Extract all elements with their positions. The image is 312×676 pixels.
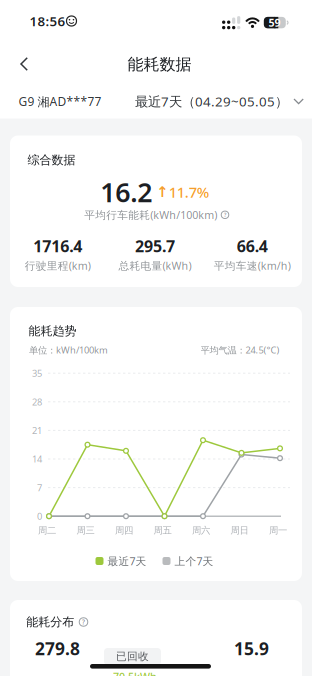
staticText: 上个7天 — [174, 554, 213, 568]
staticText: 0 — [37, 510, 42, 522]
staticText: 能耗分布 — [26, 615, 74, 629]
staticText: 平均行车能耗(kWh/100km) — [84, 208, 217, 222]
staticText: 28 — [32, 396, 42, 408]
staticText: ? — [82, 618, 85, 626]
staticText: 总耗电量(kWh) — [118, 258, 191, 273]
staticText: G9 湘AD***77 — [18, 93, 101, 109]
button[interactable]: 平均行车能耗说明 — [221, 211, 229, 219]
staticText: 7 — [37, 481, 42, 494]
staticText: 行驶里程(km) — [25, 258, 91, 273]
staticText: 16.2 — [100, 174, 152, 210]
staticText: 14 — [32, 453, 42, 465]
staticText: 66.4 — [237, 235, 268, 256]
staticText: 295.7 — [135, 235, 175, 256]
staticText: 最近7天（04.29~05.05） — [135, 92, 288, 110]
staticText: 平均气温：24.5(°C) — [200, 344, 279, 356]
staticText: 21 — [32, 424, 42, 437]
staticText: 周五 — [153, 525, 171, 536]
button[interactable]: 能耗分布说明 — [79, 618, 88, 626]
staticText: 周二 — [38, 525, 56, 536]
staticText: 59 — [269, 15, 281, 30]
staticText: 综合数据 — [27, 153, 75, 167]
staticText: 1716.4 — [33, 235, 82, 256]
staticText: 15.9 — [234, 637, 269, 660]
staticText: 18:56 — [29, 12, 65, 30]
staticText: 周四 — [115, 525, 133, 536]
button[interactable]: 最近7天（04.29~05.05） — [135, 89, 304, 113]
staticText: 最近7天 — [107, 554, 146, 568]
staticText: 35 — [32, 367, 42, 379]
staticText: 周三 — [76, 525, 94, 536]
button[interactable]: Back — [0, 44, 44, 84]
staticText: 能耗趋势 — [28, 324, 76, 338]
staticText: 周一 — [269, 525, 287, 536]
staticText: 单位：kWh/100km — [29, 344, 108, 356]
staticText: 平均车速(km/h) — [214, 258, 291, 273]
staticText: 能耗数据 — [127, 55, 191, 74]
staticText: ↑ — [156, 184, 168, 200]
staticText: ? — [224, 211, 226, 218]
staticText: 周六 — [192, 525, 210, 536]
staticText: 70.5kWh — [113, 669, 157, 676]
staticText: 279.8 — [35, 637, 80, 660]
staticText: 11.7% — [169, 182, 209, 202]
staticText: 周日 — [230, 525, 248, 536]
staticText: 已回收 — [116, 650, 149, 663]
